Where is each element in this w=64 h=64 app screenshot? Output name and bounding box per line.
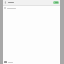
button[interactable] [4,61,59,63]
button[interactable]: Back [4,1,7,4]
button[interactable] [53,1,59,4]
button[interactable] [4,7,59,9]
